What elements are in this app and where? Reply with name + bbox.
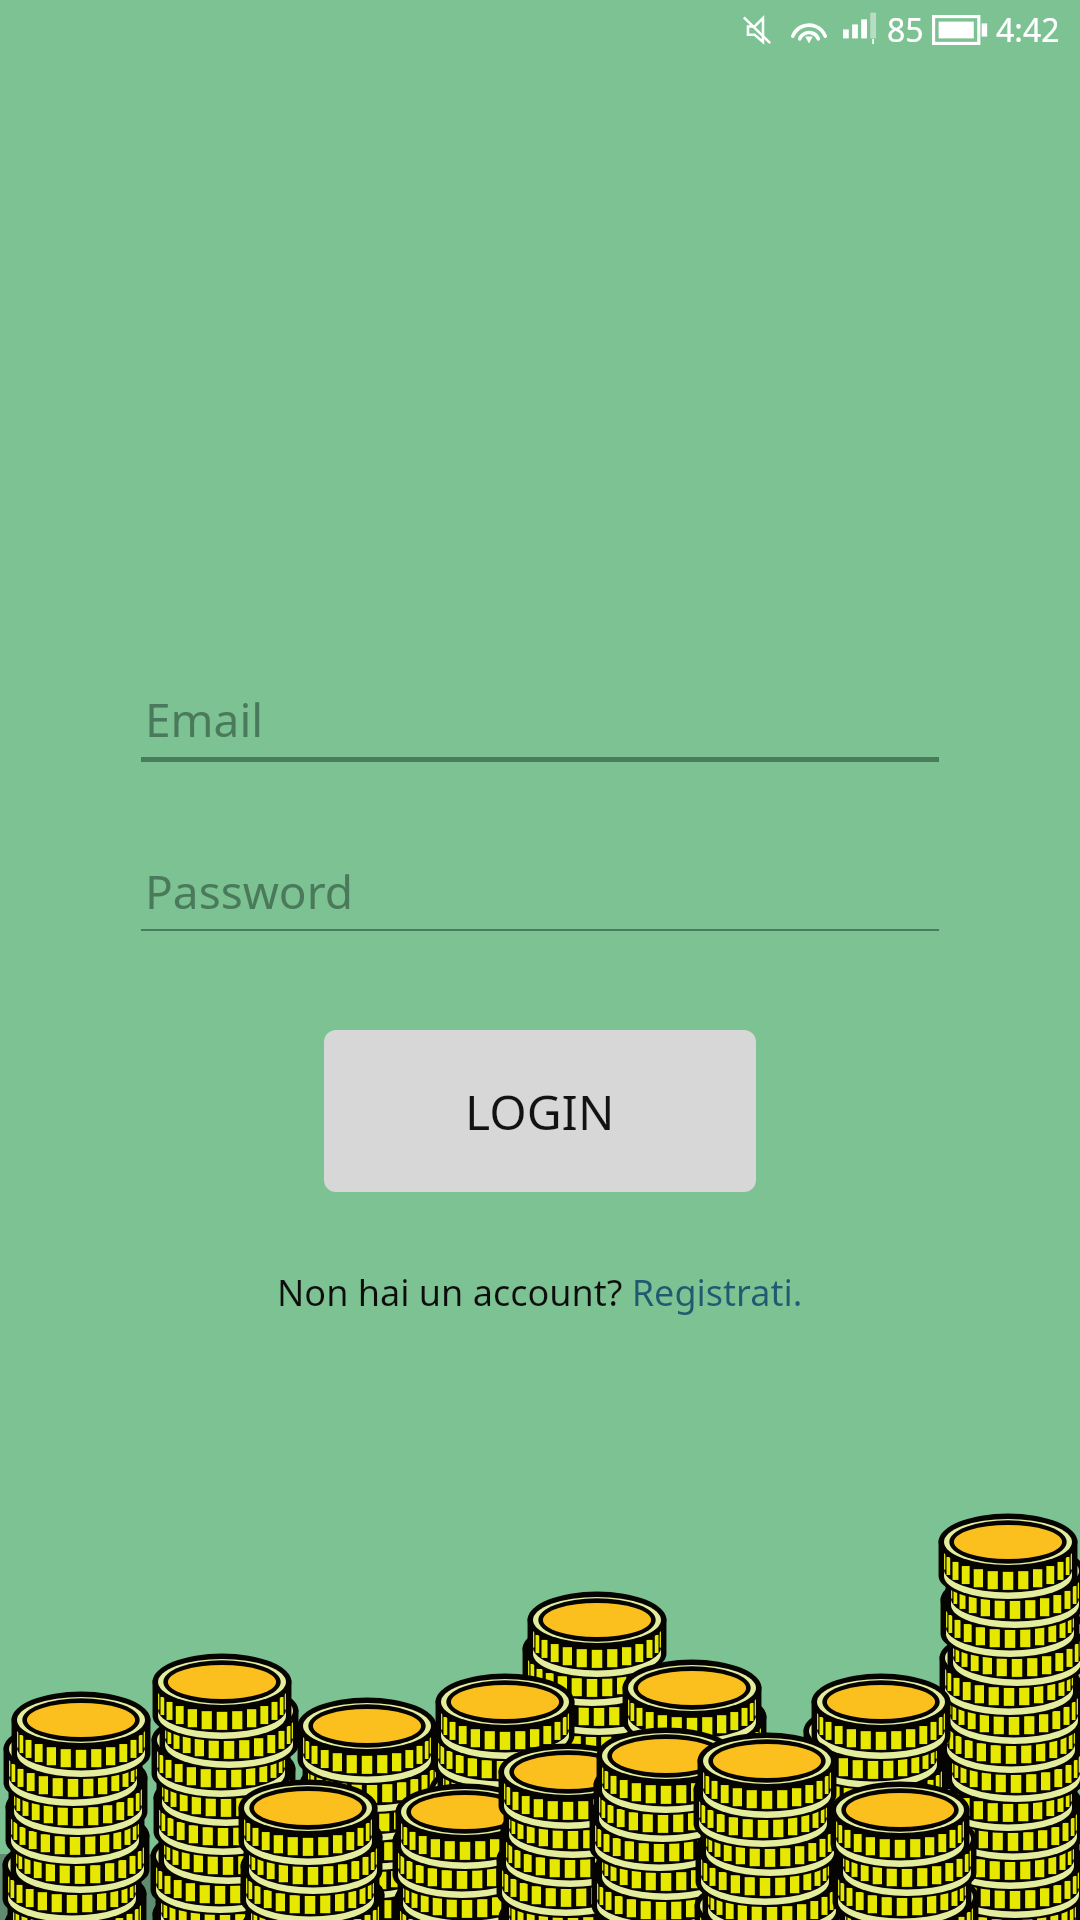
- button[interactable]: Email: [141, 688, 939, 762]
- button[interactable]: LOGIN: [324, 1030, 756, 1192]
- other: Wi-Fi: [790, 15, 828, 45]
- button[interactable]: Non hai un account? Registrati.: [277, 1268, 803, 1317]
- other: Battery: [932, 15, 987, 45]
- staticText: Email: [145, 688, 264, 751]
- other: Silent mode: [742, 15, 772, 45]
- staticText: 85: [887, 8, 924, 52]
- button[interactable]: Password: [141, 860, 939, 931]
- other: Signal strength: [843, 16, 878, 44]
- staticText: Password: [145, 860, 354, 923]
- staticText: 4:42: [996, 8, 1060, 52]
- staticText: LOGIN: [465, 1079, 615, 1144]
